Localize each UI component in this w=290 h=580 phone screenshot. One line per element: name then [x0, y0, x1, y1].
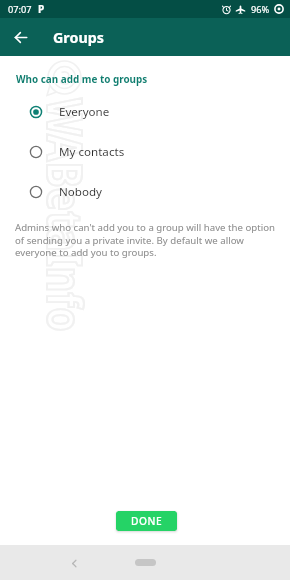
button[interactable]: My contacts	[0, 132, 290, 172]
staticText: P	[38, 2, 45, 16]
button[interactable]: Home	[135, 559, 156, 566]
staticText: DONE	[131, 514, 163, 528]
staticText: Who can add me to groups	[16, 72, 148, 85]
staticText: My contacts	[59, 144, 125, 160]
button[interactable]: DONE	[116, 511, 177, 531]
staticText: Everyone	[59, 104, 110, 120]
staticText: 07:07	[8, 3, 32, 16]
button[interactable]: Everyone	[0, 92, 290, 132]
staticText: Admins who can't add you to a group will…	[15, 221, 278, 259]
button[interactable]: Back	[62, 551, 86, 575]
button[interactable]: Nobody	[0, 172, 290, 212]
staticText: Nobody	[59, 184, 103, 200]
button[interactable]: Back	[6, 23, 34, 51]
staticText: 96%	[251, 3, 270, 16]
staticText: WABetaInfo	[32, 98, 99, 332]
staticText: Groups	[53, 28, 104, 47]
